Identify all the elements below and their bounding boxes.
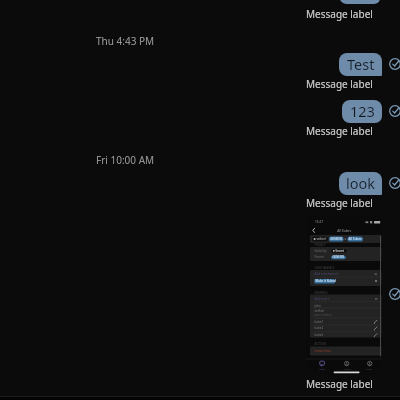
staticText: 123 [350,101,375,121]
staticText: Test [347,54,375,74]
button[interactable]: Image attachment, screenshot [306,215,382,375]
staticText: Message label [306,377,373,391]
staticText: Message label [306,196,373,210]
staticText: Fri 10:00 AM [96,153,155,167]
staticText: look [346,173,376,193]
button[interactable]: Message delivered [388,176,400,190]
staticText: Message label [306,124,373,138]
button[interactable] [339,0,380,4]
button[interactable]: Test [339,53,382,76]
staticText: Thu 4:43 PM [96,34,155,48]
button[interactable]: 123 [342,100,382,123]
button[interactable]: Message delivered [388,57,400,71]
button[interactable]: Message delivered [388,287,400,301]
staticText: Message label [306,77,373,91]
staticText: Message label [306,7,373,21]
button[interactable]: look [339,172,382,195]
button[interactable]: Message delivered [388,104,400,118]
